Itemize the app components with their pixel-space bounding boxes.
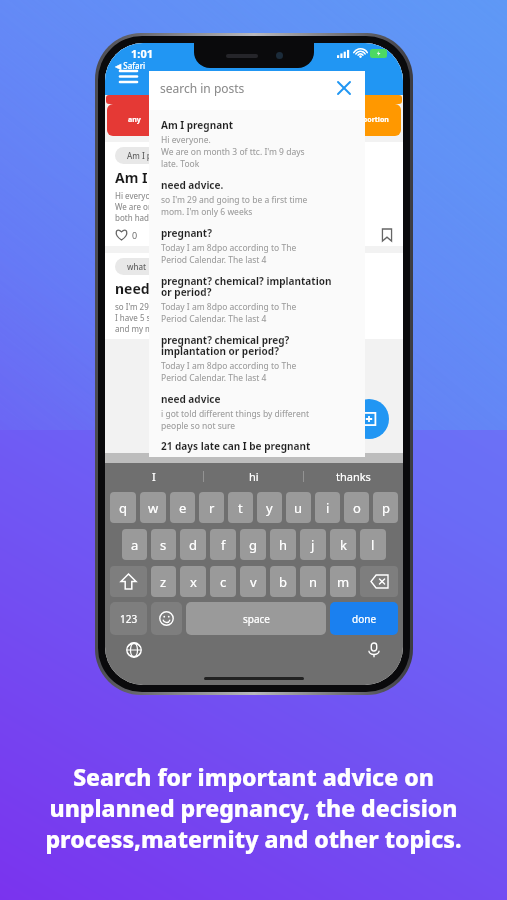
staticText: o (353, 499, 361, 517)
button[interactable]: z (151, 566, 176, 597)
button[interactable]: v (240, 566, 266, 597)
staticText: 1:01 (131, 46, 153, 61)
staticText: k (340, 536, 347, 554)
button[interactable] (165, 95, 222, 104)
button[interactable]: k (330, 529, 356, 560)
button[interactable]: Like (115, 228, 138, 241)
staticText: i (326, 499, 330, 517)
staticText: Hi everyone. (161, 134, 211, 146)
button[interactable]: 123 (110, 602, 147, 635)
staticText: pregnant? chemical preg? implantation or… (161, 333, 290, 358)
button[interactable]: Am I pregnant (127, 150, 183, 161)
staticText: pregnant? chemical? implantation or peri… (161, 274, 332, 299)
staticText: late. Took (161, 158, 200, 170)
staticText: c (220, 573, 227, 591)
button[interactable]: x (180, 566, 206, 597)
staticText: Am I pregnant (115, 168, 216, 187)
staticText: t (238, 499, 243, 517)
button[interactable]: I (105, 463, 203, 489)
button[interactable]: Change keyboard (121, 637, 147, 663)
button[interactable]: need advice. (161, 170, 357, 218)
button[interactable]: e (170, 492, 195, 523)
button[interactable]: Menu (113, 61, 143, 91)
staticText: z (160, 573, 167, 591)
button[interactable]: s (151, 529, 176, 560)
button[interactable]: p (373, 492, 398, 523)
button[interactable]: Emoji (151, 602, 182, 635)
button[interactable]: hi (204, 463, 303, 489)
button[interactable]: g (240, 529, 266, 560)
staticText: Hi everyone. (115, 190, 162, 201)
staticText: done (352, 612, 377, 626)
staticText: Today I am 8dpo according to The (161, 360, 297, 372)
button[interactable] (344, 95, 402, 104)
staticText: so I'm 29 and going to be a mom (115, 301, 239, 312)
staticText: s (160, 536, 167, 554)
button[interactable]: New post (349, 399, 389, 439)
button[interactable]: pregnant? chemical? implantation or peri… (161, 266, 357, 325)
button[interactable]: thanks (304, 463, 403, 489)
staticText: unplanned pregnancy, the decision (8, 792, 499, 823)
button[interactable]: f (210, 529, 236, 560)
button[interactable]: u (286, 492, 311, 523)
button[interactable]: Dictate (361, 637, 387, 663)
staticText: 21 days late can I be pregnant (161, 439, 311, 453)
staticText: e (179, 499, 187, 517)
button[interactable]: Am I pregnant (161, 110, 357, 170)
button[interactable]: Clear search (334, 78, 354, 98)
staticText: I have 5 siblings, grew up in a (115, 312, 226, 323)
button[interactable]: pregnant? chemical preg? implantation or… (161, 325, 357, 384)
button[interactable]: done (330, 602, 398, 635)
button[interactable]: t (228, 492, 253, 523)
staticText: h (279, 536, 288, 554)
staticText: l (371, 536, 375, 554)
button[interactable]: b (270, 566, 296, 597)
staticText: need advice (161, 392, 221, 406)
button[interactable]: i (315, 492, 340, 523)
button[interactable]: h (270, 529, 296, 560)
button[interactable]: a (122, 529, 147, 560)
staticText: b (279, 573, 287, 591)
button[interactable]: j (300, 529, 326, 560)
button[interactable]: what (127, 261, 147, 272)
button[interactable]: need advice (161, 384, 357, 432)
button[interactable]: c (210, 566, 236, 597)
button[interactable]: m (330, 566, 356, 597)
button[interactable]: w (140, 492, 166, 523)
staticText: ◀ Safari (115, 60, 146, 71)
button[interactable]: o (344, 492, 369, 523)
button[interactable]: r (199, 492, 224, 523)
button[interactable]: n (300, 566, 326, 597)
button[interactable]: pregnant? (161, 218, 357, 266)
button[interactable] (106, 95, 163, 104)
staticText: any (128, 115, 141, 125)
staticText: Am I pregnant (127, 150, 183, 161)
staticText: Search for important advice on (8, 761, 499, 792)
button[interactable]: space (186, 602, 326, 635)
staticText: search in posts (160, 80, 245, 96)
staticText: hi (249, 469, 259, 484)
button[interactable]: d (180, 529, 206, 560)
staticText: Today I am 8dpo according to The (161, 301, 297, 313)
staticText: mom. I'm only 6 weeks (161, 206, 253, 218)
staticText: f (221, 536, 226, 554)
button[interactable]: any (107, 104, 162, 136)
staticText: people so not sure (161, 420, 236, 432)
staticText: p (382, 499, 390, 517)
staticText: both had ... (115, 212, 158, 223)
button[interactable]: Bookmark (381, 229, 393, 241)
button[interactable]: y (257, 492, 282, 523)
button[interactable]: q (110, 492, 136, 523)
staticText: need advice. (115, 279, 203, 298)
staticText: j (311, 536, 315, 554)
staticText: n (309, 573, 318, 591)
button[interactable]: Abortion (345, 104, 401, 136)
button[interactable]: l (360, 529, 386, 560)
staticText: We are on month 3 of ttc and we (115, 201, 238, 212)
staticText: g (249, 536, 257, 554)
button[interactable]: Backspace (360, 566, 398, 597)
staticText: w (148, 499, 159, 517)
button[interactable]: Shift (110, 566, 147, 597)
